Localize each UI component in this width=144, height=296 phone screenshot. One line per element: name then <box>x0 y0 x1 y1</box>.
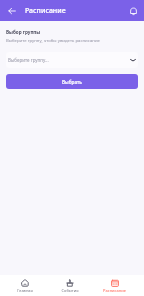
staticText: События <box>61 288 79 293</box>
button[interactable]: Главная <box>2 279 47 293</box>
staticText: Расписание <box>25 6 66 16</box>
button[interactable]: Notifications <box>126 4 140 18</box>
staticText: Выберите группу... <box>8 57 49 63</box>
button[interactable]: Выберите группу... <box>6 52 138 68</box>
button[interactable]: События <box>47 279 92 293</box>
button[interactable]: Выбрать <box>6 74 138 89</box>
staticText: Расписание <box>103 288 126 293</box>
staticText: Выбор группы <box>6 29 41 35</box>
staticText: Выберите группу, чтобы увидеть расписани… <box>6 37 100 43</box>
button[interactable]: Back <box>5 4 19 18</box>
staticText: Выбрать <box>62 79 82 85</box>
staticText: Главная <box>17 288 33 293</box>
button[interactable]: Расписание <box>92 279 137 293</box>
